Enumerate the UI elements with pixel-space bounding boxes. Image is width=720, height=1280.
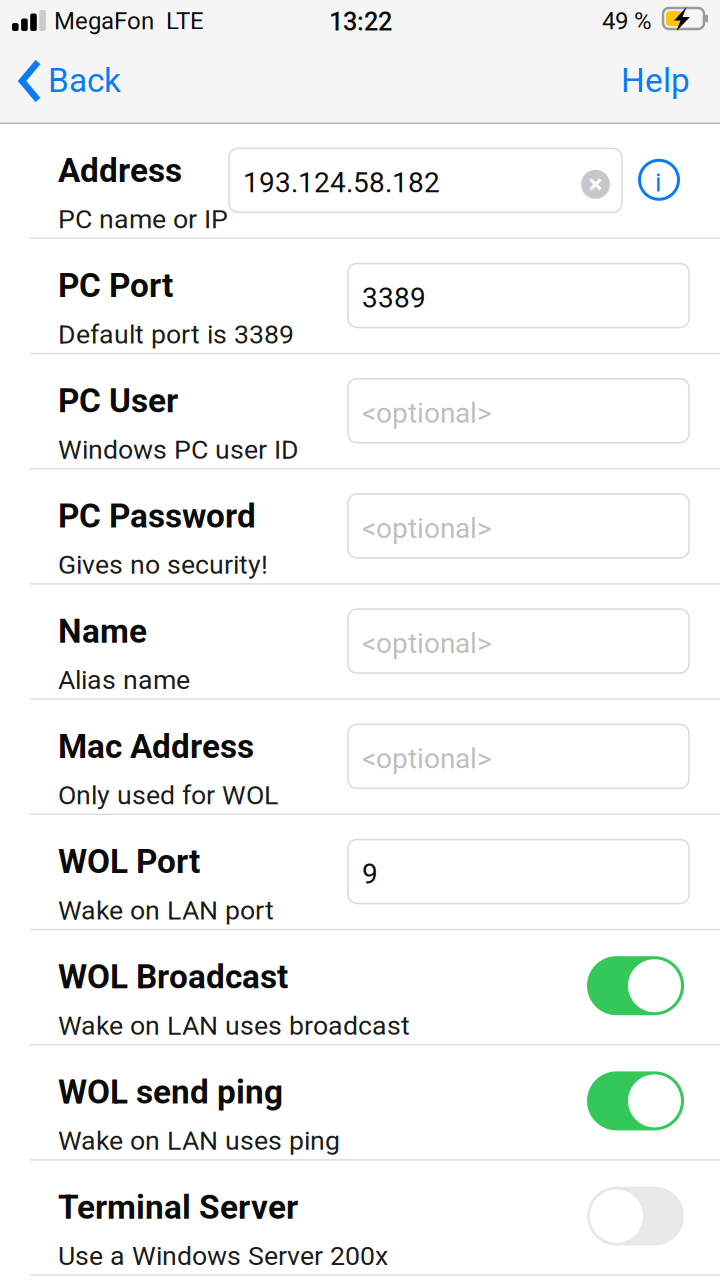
staticText: <optional> [362,397,492,429]
staticText: MegaFon [54,7,154,35]
staticText: WOL Broadcast [58,957,288,996]
staticText: Address [58,151,182,190]
staticText: <optional> [362,627,492,660]
staticText: Windows PC user ID [58,434,299,465]
button[interactable]: Off [587,1187,684,1246]
staticText: Gives no security! [58,549,268,580]
staticText: Wake on LAN port [58,895,274,926]
staticText: <optional> [362,512,492,545]
staticText: Back [48,61,121,100]
button[interactable]: On [587,956,684,1015]
staticText: Terminal Server [58,1188,298,1227]
staticText: 13:22 [329,7,392,37]
staticText: Alias name [58,664,190,696]
staticText: LTE [166,7,204,35]
staticText: PC User [58,381,178,420]
staticText: Mac Address [58,727,254,766]
button[interactable]: Help [600,48,710,122]
staticText: WOL send ping [58,1073,283,1112]
staticText: PC name or IP [58,203,228,235]
staticText: 49 % [602,7,652,35]
button[interactable]: Clear text [571,160,619,208]
staticText: Use a Windows Server 200x [58,1240,388,1272]
staticText: Wake on LAN uses broadcast [58,1010,410,1041]
staticText: 3389 [362,281,426,314]
staticText: WOL Port [58,842,200,881]
staticText: PC Port [58,266,173,305]
staticText: Help [621,61,690,100]
staticText: <optional> [362,742,492,775]
staticText: Wake on LAN uses ping [58,1125,340,1156]
staticText: 193.124.58.182 [243,166,440,199]
staticText: PC Password [58,497,256,536]
staticText: i [655,167,661,198]
button[interactable]: Information [635,156,683,204]
button[interactable]: Back [0,48,140,122]
button[interactable]: On [587,1071,684,1130]
staticText: 9 [362,857,378,890]
staticText: Default port is 3389 [58,319,294,350]
staticText: Only used for WOL [58,779,278,811]
staticText: Name [58,612,147,651]
